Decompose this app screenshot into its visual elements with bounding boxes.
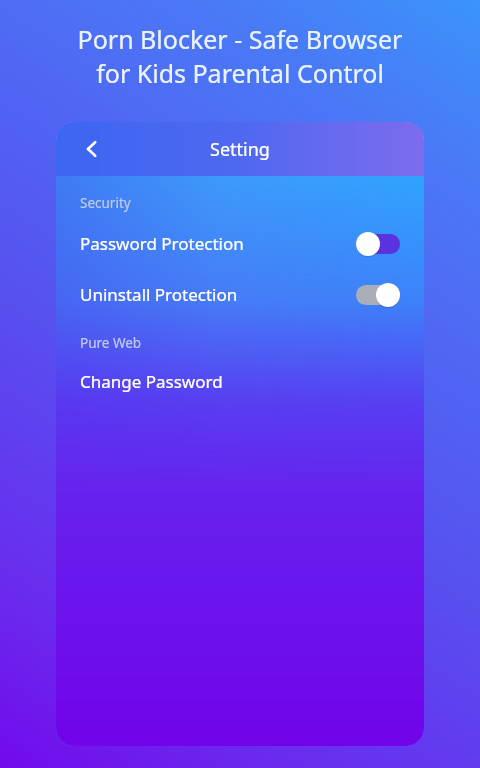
- staticText: Uninstall Protection: [80, 283, 238, 306]
- button[interactable]: Toggle off: [356, 232, 400, 256]
- staticText: Change Password: [80, 370, 223, 393]
- button[interactable]: Password Protection: [56, 218, 424, 269]
- staticText: Pure Web: [80, 334, 142, 352]
- button[interactable]: Back: [70, 127, 114, 171]
- staticText: Password Protection: [80, 232, 244, 255]
- staticText: Setting: [210, 137, 270, 162]
- button[interactable]: Uninstall Protection: [56, 269, 424, 320]
- staticText: Security: [80, 194, 131, 212]
- staticText: Porn Blocker - Safe Browser for Kids Par…: [12, 22, 468, 90]
- button[interactable]: Toggle on: [356, 283, 400, 307]
- button[interactable]: Change Password: [56, 358, 424, 404]
